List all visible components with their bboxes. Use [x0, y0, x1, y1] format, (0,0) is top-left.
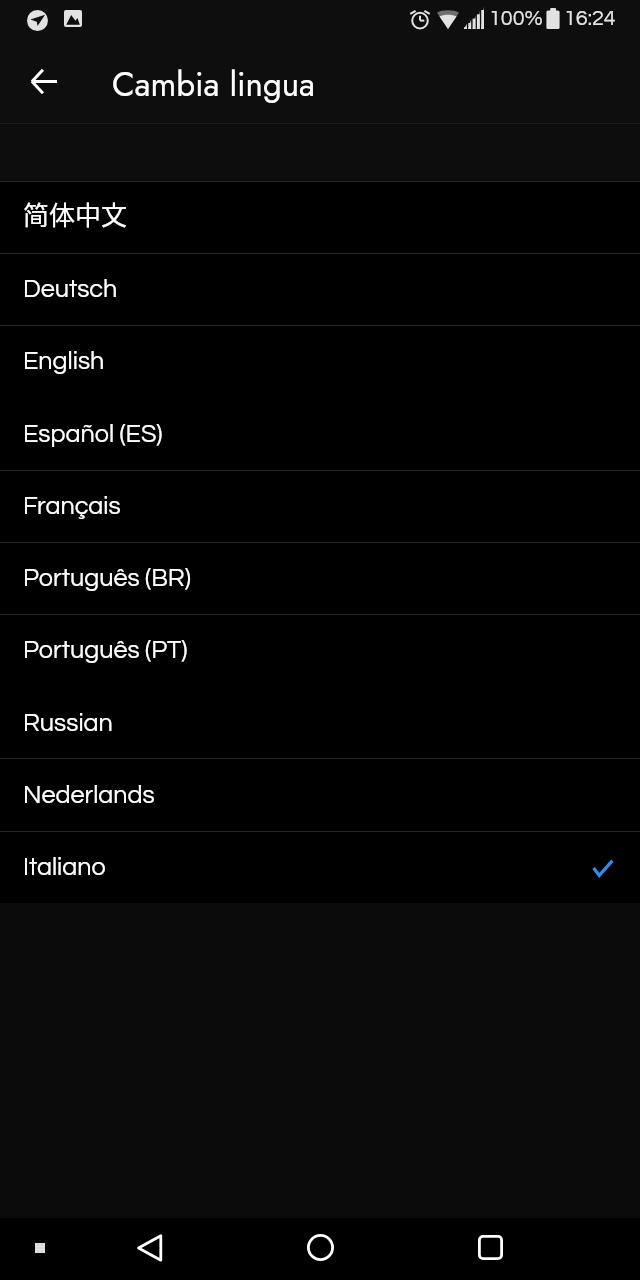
- staticText: Français: [23, 493, 121, 519]
- button[interactable]: Home: [280, 1216, 360, 1278]
- button[interactable]: English: [0, 325, 640, 397]
- staticText: 100%: [489, 7, 543, 29]
- staticText: Nederlands: [23, 782, 155, 808]
- button[interactable]: Português (BR): [0, 542, 640, 614]
- staticText: 简体中文: [23, 195, 128, 233]
- staticText: Cambia lingua: [112, 61, 315, 109]
- button[interactable]: Russian: [0, 687, 640, 759]
- button[interactable]: Français: [0, 470, 640, 542]
- staticText: Español (ES): [23, 421, 163, 447]
- button[interactable]: Menu: [0, 1217, 80, 1279]
- staticText: Português (PT): [23, 637, 188, 663]
- staticText: Português (BR): [23, 565, 191, 591]
- staticText: Italiano: [23, 854, 106, 880]
- button[interactable]: Back: [0, 45, 88, 123]
- button[interactable]: Recents: [450, 1216, 530, 1278]
- button[interactable]: Deutsch: [0, 253, 640, 325]
- staticText: Russian: [23, 710, 113, 736]
- button[interactable]: Nederlands: [0, 759, 640, 831]
- button[interactable]: Español (ES): [0, 398, 640, 470]
- button[interactable]: Back: [110, 1217, 190, 1279]
- staticText: English: [23, 348, 105, 374]
- button[interactable]: Português (PT): [0, 614, 640, 686]
- button[interactable]: Italiano: [0, 831, 640, 903]
- staticText: Deutsch: [23, 276, 118, 302]
- staticText: 16:24: [564, 7, 616, 29]
- button[interactable]: 简体中文: [0, 181, 640, 253]
